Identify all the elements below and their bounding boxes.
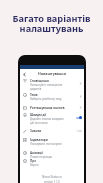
staticText: Значки (30, 129, 42, 133)
staticText: Тема (30, 93, 38, 97)
staticText: Nova Statusu (42, 175, 62, 179)
staticText: Сповіщення (30, 79, 49, 83)
button[interactable]: Індикатори (20, 138, 84, 146)
staticText: Індикатори (30, 138, 48, 142)
staticText: Швидкі дії (30, 113, 47, 117)
staticText: Про (30, 159, 37, 163)
button[interactable]: Про (20, 159, 84, 167)
button[interactable]: Розташування кнопок (20, 106, 84, 110)
button[interactable]: Швидкі дії (20, 113, 84, 125)
staticText: додатків (30, 87, 42, 91)
staticText: Багато варіантів налаштувань (0, 12, 103, 35)
staticText: Додайте кнопки швидких (30, 117, 64, 121)
staticText: Анімації (30, 151, 44, 155)
button[interactable]: Сповіщення (20, 79, 84, 91)
button[interactable]: Анімації (20, 151, 84, 159)
staticText: дій на панель (30, 121, 48, 125)
button[interactable]: Значки (20, 129, 84, 133)
staticText: Версія (30, 163, 39, 167)
staticText: Виберіть улюблену тему (30, 97, 62, 101)
staticText: version 1.1.0 (44, 180, 60, 183)
button[interactable]: Тема (20, 93, 84, 101)
staticText: Налаштуйте сповіщення (30, 83, 63, 87)
staticText: Налаштування (20, 71, 84, 76)
button[interactable]: Toggle on (76, 116, 82, 119)
staticText: Розташування кнопок (30, 106, 65, 110)
button[interactable]: Toggle off (76, 129, 82, 132)
staticText: Показувати стан мережі (30, 142, 62, 146)
staticText: Плавні переходи (30, 155, 52, 159)
button[interactable]: Back (21, 71, 27, 77)
